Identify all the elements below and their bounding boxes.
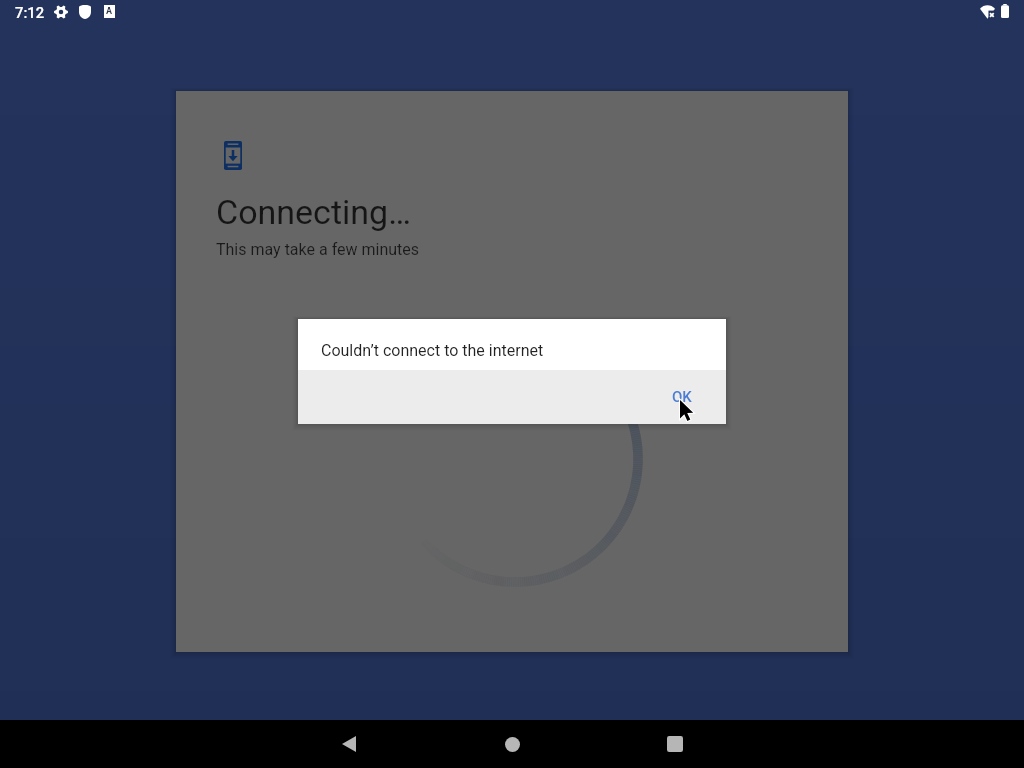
staticText: This may take a few minutes	[216, 240, 420, 259]
button[interactable]: OK	[656, 376, 708, 418]
staticText: A	[106, 6, 113, 17]
staticText: OK	[672, 388, 692, 406]
button[interactable]: Recent apps	[651, 720, 699, 768]
staticText: Connecting…	[216, 192, 411, 232]
staticText: 7:12	[15, 4, 45, 21]
staticText: Couldn’t connect to the internet	[321, 341, 544, 360]
button[interactable]: Home	[488, 720, 536, 768]
button[interactable]: Back	[325, 720, 373, 768]
